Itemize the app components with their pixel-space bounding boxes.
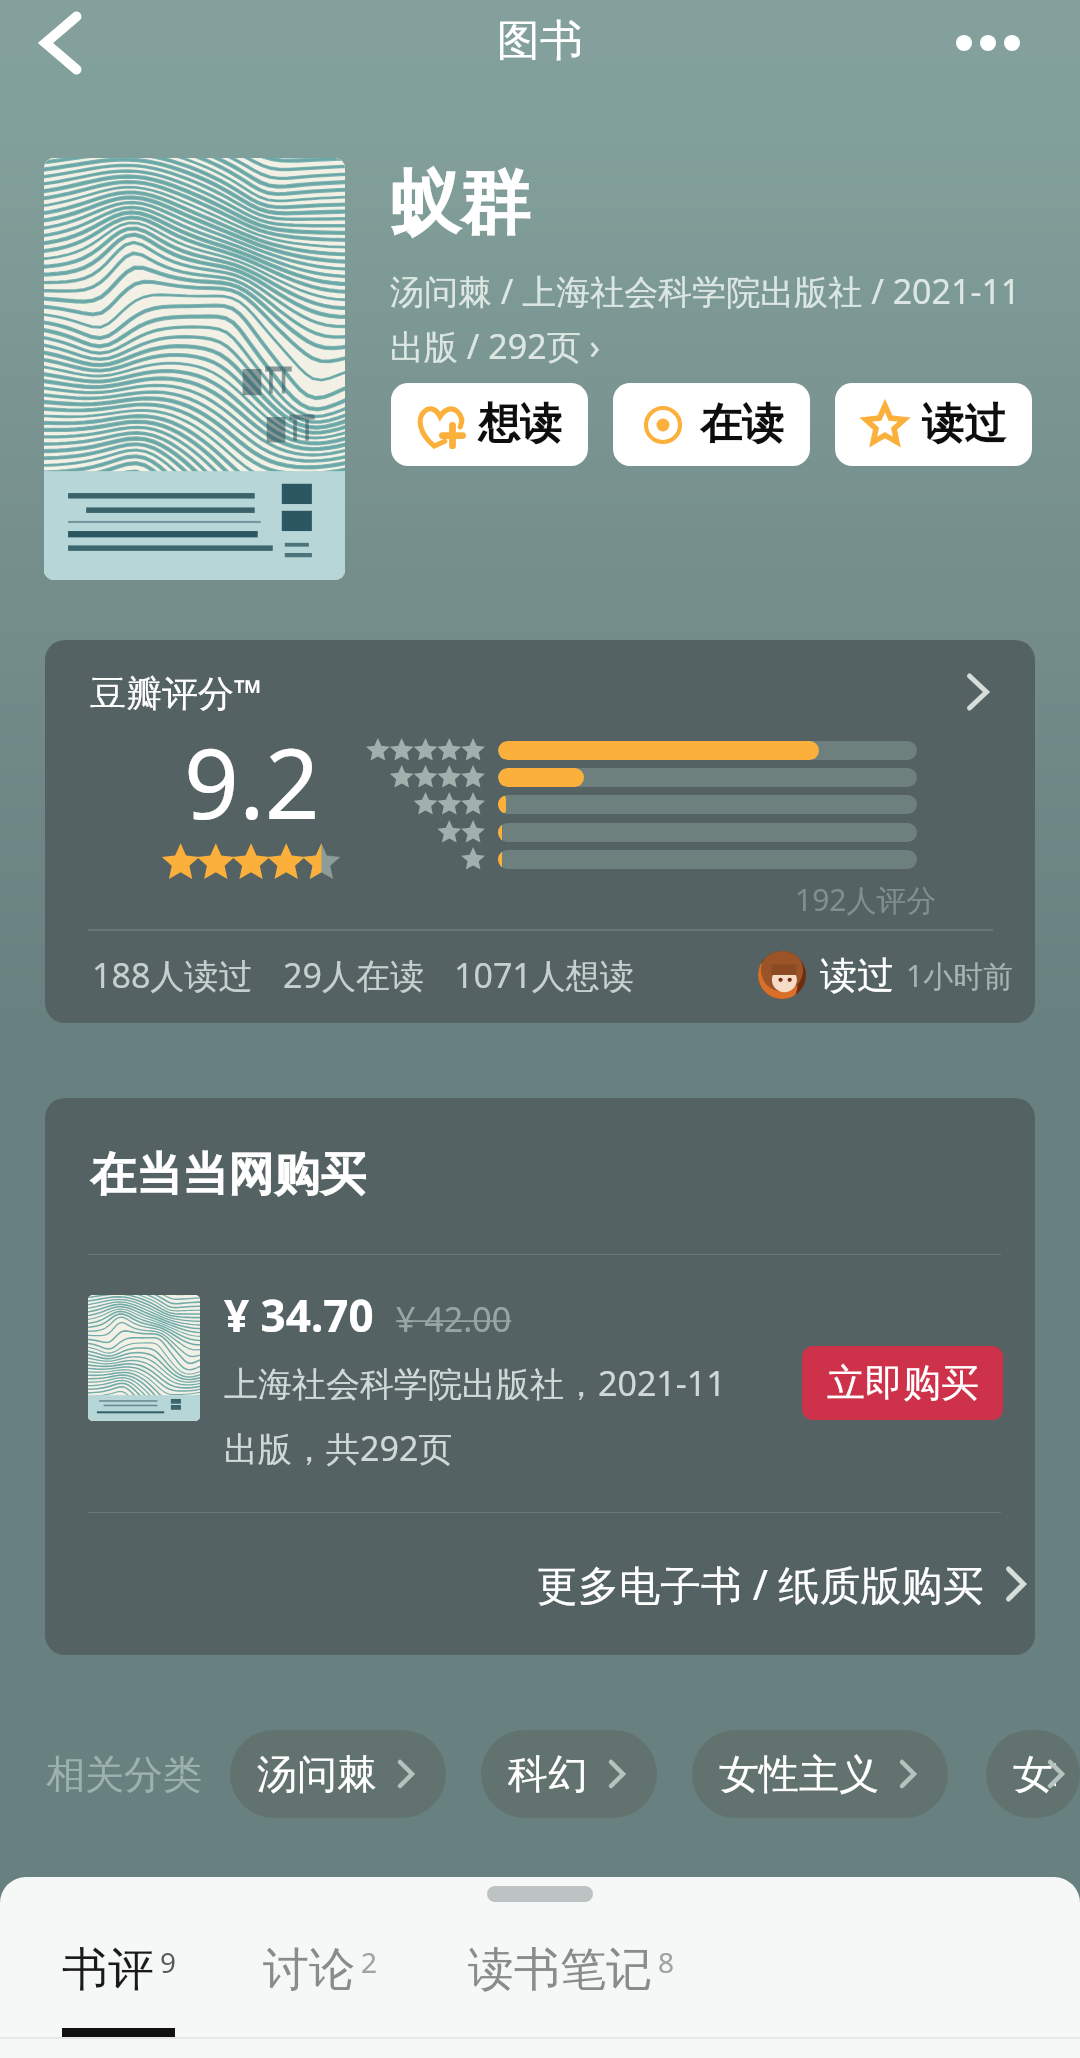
staticText: 女性主义 — [719, 1749, 879, 1799]
staticText: 9 — [160, 1943, 177, 1981]
staticText: 科幻 — [508, 1749, 588, 1799]
staticText: 在读 — [700, 398, 784, 451]
staticText: 汤问棘 — [257, 1749, 377, 1799]
staticText: ¥ 34.70 — [224, 1285, 374, 1345]
button[interactable]: 想读 — [391, 383, 588, 466]
button[interactable]: 豆瓣评分™ — [45, 640, 1035, 1023]
staticText: 立即购买 — [827, 1359, 979, 1407]
staticText: 192人评分 — [795, 879, 937, 920]
staticText: 更多电子书 / 纸质版购买 — [537, 1556, 984, 1612]
staticText: 图书 — [497, 14, 583, 68]
button[interactable]: 在读 — [613, 383, 810, 466]
button[interactable]: 女性主义 — [719, 1730, 924, 1818]
staticText: 9.2 — [184, 716, 320, 847]
staticText: 188人读过 — [92, 952, 253, 998]
staticText: 读过 — [820, 952, 894, 999]
button[interactable]: 读书笔记 — [468, 1927, 675, 2058]
staticText: 汤问棘 / 上海社会科学院出版社 / 2021-11出版 / 292页 › — [390, 268, 1035, 369]
staticText: 2 — [361, 1943, 378, 1981]
staticText: 女权 — [1013, 1749, 1056, 1799]
staticText: 书评 — [62, 1941, 154, 1999]
staticText: 29人在读 — [283, 952, 424, 998]
staticText: 在当当网购买 — [90, 1146, 366, 1204]
button[interactable]: 女权 — [1013, 1730, 1056, 1818]
staticText: 蚁群 — [390, 160, 530, 248]
staticText: 讨论 — [263, 1941, 355, 1999]
button[interactable]: Back — [18, 3, 98, 83]
button[interactable]: 科幻 — [508, 1730, 633, 1818]
button[interactable]: 书评 — [62, 1927, 177, 2058]
staticText: 读过 — [922, 398, 1006, 451]
staticText: 读书笔记 — [468, 1941, 652, 1999]
staticText: 相关分类 — [46, 1750, 202, 1799]
button[interactable]: 读过 — [835, 383, 1032, 466]
button[interactable]: 更多电子书 / 纸质版购买 — [537, 1552, 1035, 1616]
staticText: 想读 — [478, 398, 562, 451]
button[interactable]: 立即购买 — [802, 1346, 1003, 1420]
button[interactable]: 蚁群 — [390, 160, 1035, 369]
button[interactable] — [44, 158, 345, 580]
button[interactable]: 汤问棘 — [257, 1730, 422, 1818]
staticText: 8 — [658, 1943, 675, 1981]
button[interactable]: 豆瓣评分™ — [88, 664, 1003, 720]
button[interactable]: 讨论 — [263, 1927, 378, 2058]
staticText: 1071人想读 — [454, 952, 634, 998]
button[interactable]: 读过 — [758, 948, 1014, 1002]
staticText: ¥ 42.00 — [396, 1296, 512, 1342]
button[interactable]: More options — [948, 3, 1028, 83]
staticText: 豆瓣评分™ — [90, 668, 262, 717]
staticText: 1小时前 — [906, 955, 1014, 996]
other: Rating details — [953, 667, 1003, 717]
staticText: 上海社会科学院出版社，2021-11出版，共292页 — [224, 1360, 748, 1471]
